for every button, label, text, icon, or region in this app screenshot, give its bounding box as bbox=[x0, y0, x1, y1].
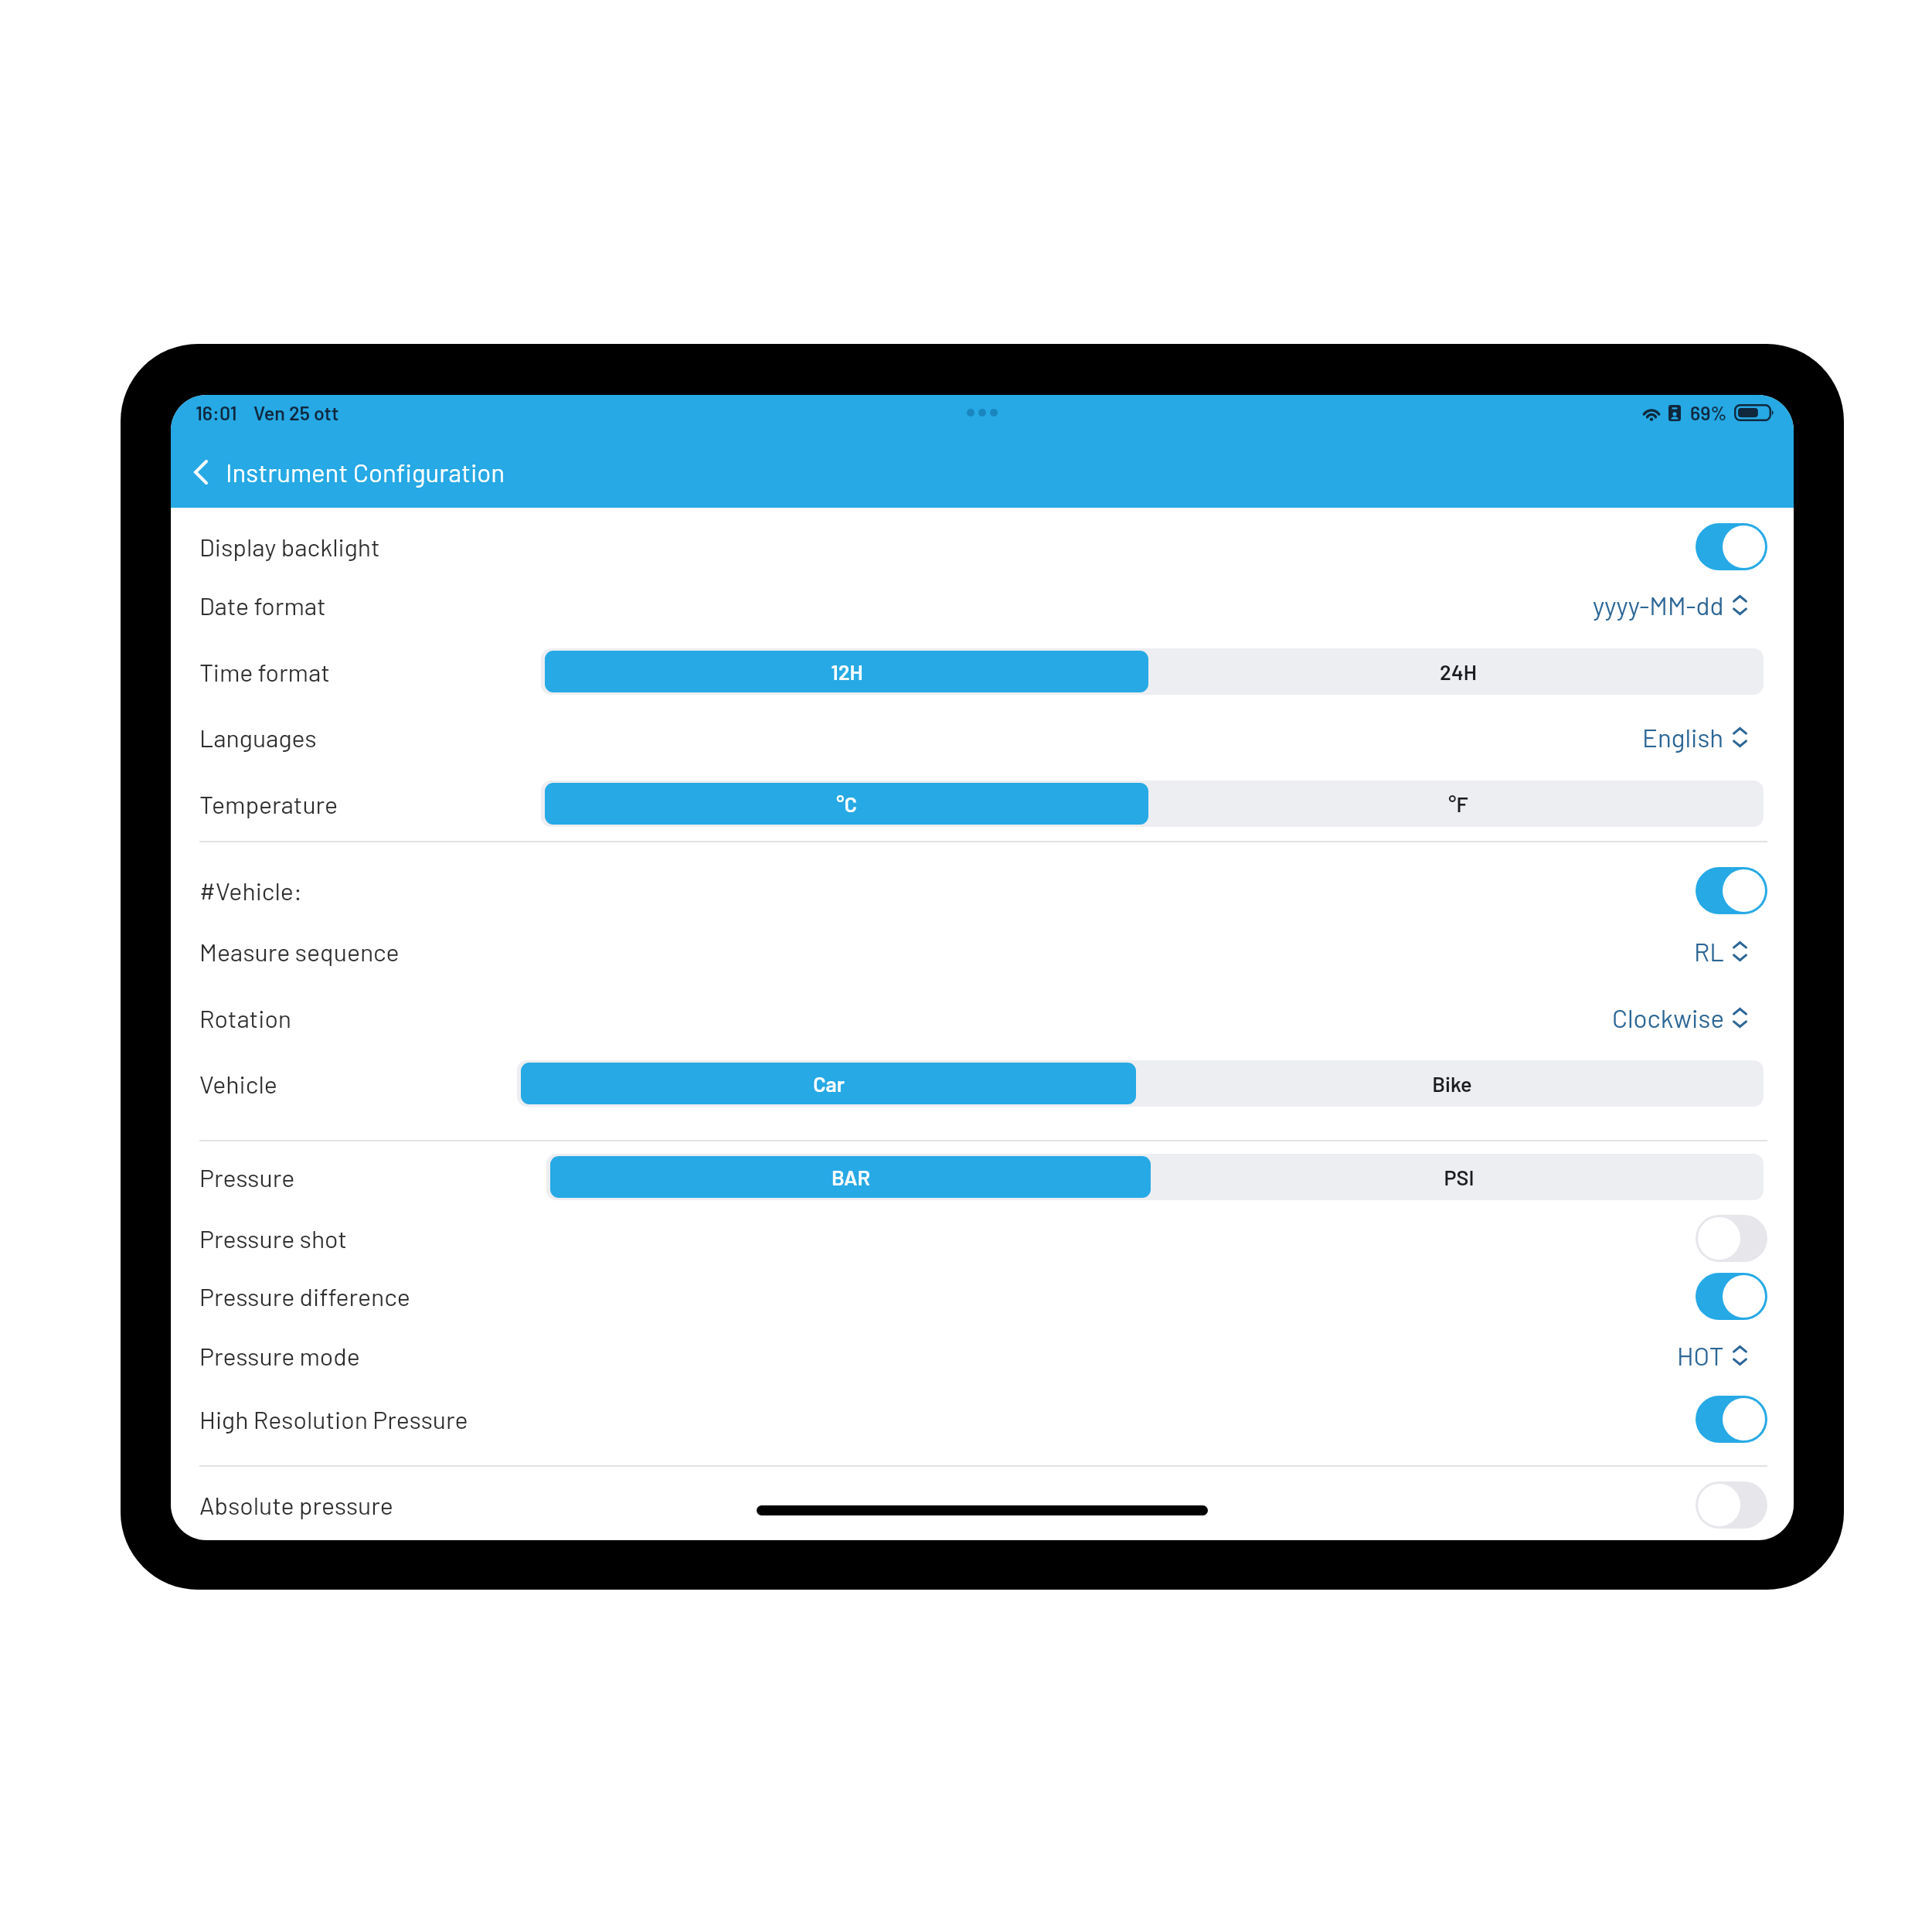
button[interactable]: 24H bbox=[1152, 648, 1764, 695]
button[interactable]: Enabled bbox=[1696, 1273, 1767, 1320]
button[interactable]: Pressure bbox=[199, 1149, 1767, 1205]
staticText: HOT bbox=[1677, 1340, 1724, 1371]
staticText: Vehicle bbox=[199, 1069, 277, 1098]
button[interactable]: BAR bbox=[550, 1156, 1151, 1198]
button[interactable]: Disabled bbox=[1696, 1481, 1767, 1529]
button[interactable]: Vehicle bbox=[199, 1056, 1767, 1111]
button[interactable]: 12H bbox=[545, 651, 1148, 692]
button[interactable]: English bbox=[1642, 722, 1747, 753]
button[interactable]: Bike bbox=[1140, 1060, 1764, 1107]
staticText: Instrument Configuration bbox=[226, 457, 505, 488]
staticText: Car bbox=[813, 1071, 845, 1096]
staticText: Measure sequence bbox=[199, 937, 400, 966]
button[interactable]: Car bbox=[521, 1063, 1136, 1104]
staticText: Pressure shot bbox=[199, 1223, 347, 1253]
other: Back bbox=[189, 455, 213, 489]
button[interactable]: Pressure difference bbox=[199, 1268, 1767, 1324]
button[interactable]: Enabled bbox=[1696, 523, 1767, 570]
button[interactable]: RL bbox=[1694, 936, 1747, 967]
button[interactable]: PSI bbox=[1155, 1154, 1764, 1200]
staticText: BAR bbox=[832, 1165, 870, 1189]
staticText: Clockwise bbox=[1612, 1002, 1724, 1033]
staticText: Temperature bbox=[199, 789, 338, 818]
button[interactable]: HOT bbox=[1677, 1340, 1747, 1371]
button[interactable]: Date format bbox=[199, 577, 1767, 633]
button[interactable]: Time format bbox=[199, 644, 1767, 699]
button[interactable]: Pressure shot bbox=[199, 1210, 1767, 1266]
button[interactable]: °F bbox=[1152, 781, 1764, 827]
staticText: Date format bbox=[199, 590, 326, 620]
staticText: Absolute pressure bbox=[199, 1490, 393, 1519]
button[interactable]: Enabled bbox=[1696, 867, 1767, 914]
staticText: Time format bbox=[199, 657, 330, 686]
button[interactable]: Disabled bbox=[1696, 1215, 1767, 1262]
staticText: Rotation bbox=[199, 1003, 292, 1032]
staticText: Pressure difference bbox=[199, 1281, 410, 1311]
button[interactable]: Display backlight bbox=[199, 519, 1767, 574]
staticText: °F bbox=[1448, 791, 1468, 816]
staticText: Ven 25 ott bbox=[253, 401, 339, 424]
button[interactable]: Measure sequence bbox=[199, 923, 1767, 979]
button[interactable]: #Vehicle: bbox=[199, 862, 1767, 918]
staticText: English bbox=[1642, 722, 1724, 753]
staticText: RL bbox=[1694, 936, 1724, 967]
staticText: Bike bbox=[1432, 1071, 1472, 1096]
staticText: 12H bbox=[831, 659, 863, 684]
staticText: 69% bbox=[1690, 401, 1727, 424]
staticText: Pressure bbox=[199, 1162, 295, 1192]
staticText: #Vehicle: bbox=[199, 876, 302, 905]
staticText: Languages bbox=[199, 723, 317, 752]
button[interactable]: Back bbox=[189, 449, 730, 495]
button[interactable]: yyyy-MM-dd bbox=[1593, 590, 1747, 621]
button[interactable]: Clockwise bbox=[1612, 1002, 1747, 1033]
staticText: 24H bbox=[1440, 659, 1477, 684]
staticText: PSI bbox=[1444, 1165, 1475, 1189]
button[interactable]: High Resolution Pressure bbox=[199, 1391, 1767, 1447]
button[interactable]: Absolute pressure bbox=[199, 1477, 1767, 1532]
staticText: High Resolution Pressure bbox=[199, 1404, 468, 1434]
staticText: °C bbox=[836, 791, 857, 816]
staticText: 16:01 bbox=[196, 401, 237, 424]
staticText: Pressure mode bbox=[199, 1341, 360, 1370]
button[interactable]: Enabled bbox=[1696, 1396, 1767, 1443]
staticText: yyyy-MM-dd bbox=[1593, 590, 1724, 621]
button[interactable]: Languages bbox=[199, 709, 1767, 765]
button[interactable]: Pressure mode bbox=[199, 1328, 1767, 1383]
button[interactable]: Temperature bbox=[199, 776, 1767, 832]
button[interactable]: Rotation bbox=[199, 990, 1767, 1046]
button[interactable]: °C bbox=[545, 783, 1148, 825]
staticText: Display backlight bbox=[199, 532, 380, 561]
